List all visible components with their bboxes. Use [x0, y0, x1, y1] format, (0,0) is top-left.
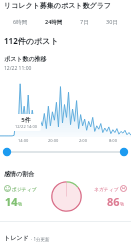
- staticText: 感情の割合: [4, 170, 35, 178]
- staticText: 14: [5, 194, 18, 209]
- staticText: トレンド: [4, 234, 29, 242]
- staticText: 2:00: [79, 138, 87, 143]
- staticText: 24時間: [45, 18, 63, 26]
- button[interactable]: 7日: [76, 16, 93, 28]
- staticText: 14:00: [18, 138, 29, 143]
- staticText: 112件のポスト: [4, 35, 59, 46]
- button[interactable]: 6時間: [9, 16, 32, 28]
- staticText: 8:00: [109, 138, 117, 143]
- staticText: %: [120, 201, 125, 208]
- staticText: 12/22 14:00: [15, 124, 37, 129]
- staticText: ネガティブ: [94, 186, 119, 192]
- staticText: · 1分更新: [31, 236, 50, 242]
- staticText: 7日: [80, 18, 89, 26]
- staticText: 6時間: [13, 18, 28, 26]
- staticText: 5件: [21, 116, 31, 124]
- button[interactable]: 24時間: [41, 16, 67, 28]
- staticText: リコレクト募集のポスト数グラフ: [4, 1, 111, 10]
- button[interactable]: 30日: [102, 16, 122, 28]
- staticText: 30日: [106, 18, 118, 26]
- button[interactable]: Time range slider: [0, 146, 131, 159]
- button[interactable]: ポジティブ: [4, 185, 37, 192]
- staticText: 20:00: [48, 138, 59, 143]
- staticText: ポジティブ: [12, 186, 37, 192]
- staticText: 12/22 11:00: [4, 65, 32, 72]
- staticText: 86: [107, 194, 120, 209]
- staticText: ポスト数の推移: [4, 55, 47, 63]
- button[interactable]: トレンド: [4, 234, 50, 242]
- staticText: %: [18, 201, 23, 208]
